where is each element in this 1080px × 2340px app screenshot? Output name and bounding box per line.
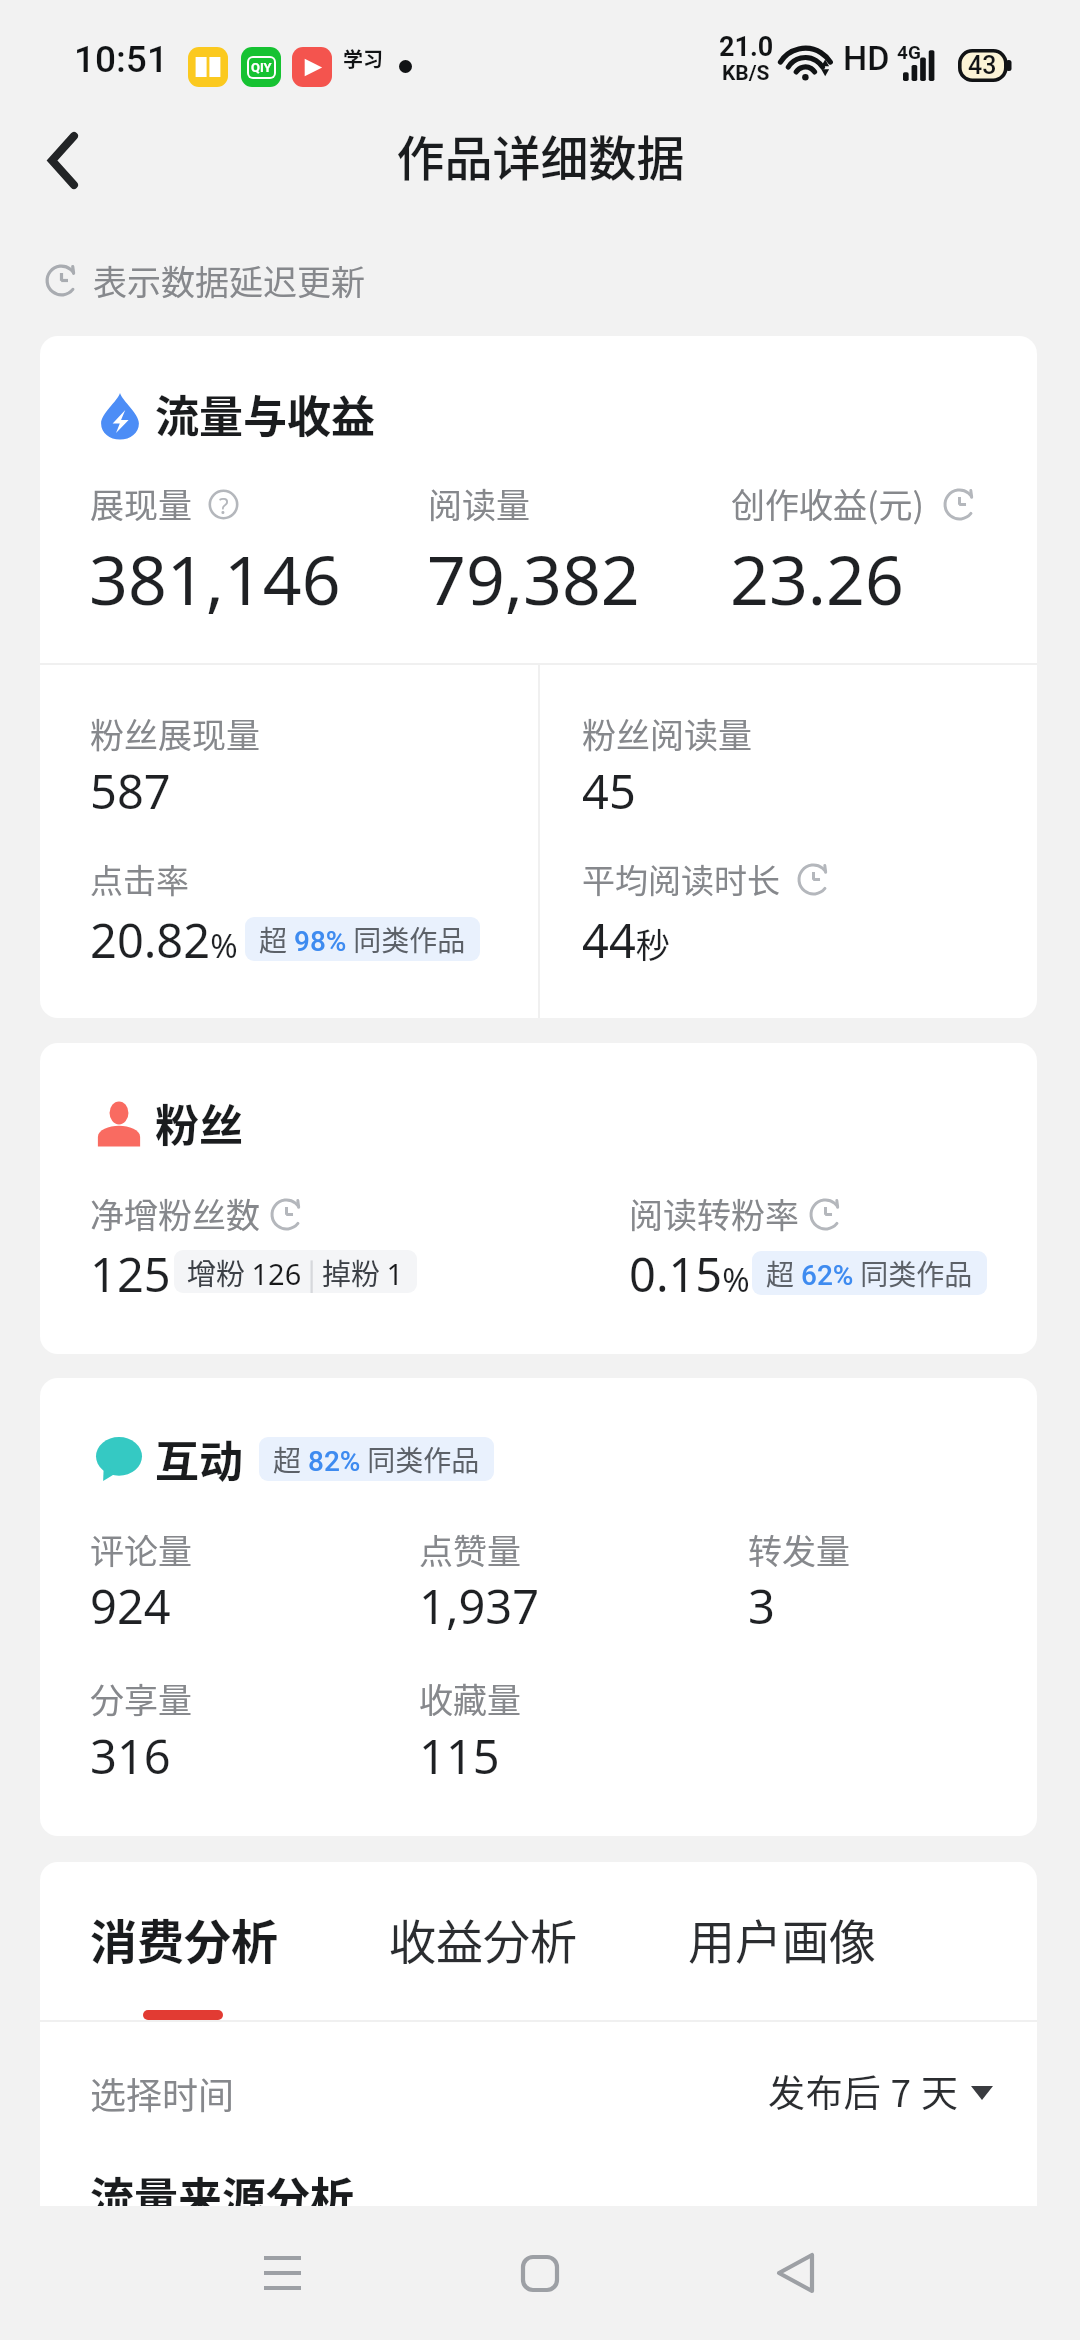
button[interactable]: 发布后 7 天 — [768, 2064, 993, 2118]
staticText: 净增粉丝数 — [90, 1189, 260, 1238]
staticText: 收益分析 — [389, 1904, 577, 1972]
staticText: 粉丝阅读量 — [582, 709, 752, 758]
staticText: 选择时间 — [90, 2067, 235, 2119]
staticText: 点赞量 — [419, 1525, 521, 1574]
button[interactable]: Recent apps — [227, 2218, 337, 2328]
staticText: 125 — [90, 1242, 171, 1306]
staticText: 学习 — [343, 44, 383, 73]
staticText: 381,146 — [89, 532, 341, 625]
staticText: ? — [219, 490, 229, 520]
staticText: 115 — [419, 1724, 500, 1788]
staticText: 粉丝展现量 — [90, 709, 260, 758]
staticText: 3 — [748, 1574, 775, 1638]
staticText: 0.15% — [629, 1242, 750, 1306]
staticText: 收藏量 — [419, 1674, 521, 1723]
staticText: 20.82% — [90, 908, 238, 972]
staticText: 79,382 — [427, 532, 640, 625]
staticText: 流量与收益 — [155, 382, 375, 446]
button[interactable]: Back — [23, 120, 103, 200]
staticText: 924 — [90, 1574, 171, 1638]
staticText: 评论量 — [90, 1525, 192, 1574]
staticText: 316 — [90, 1724, 171, 1788]
button[interactable]: What is impressions? — [208, 489, 239, 520]
staticText: 增粉 126 | 掉粉 1 — [187, 1251, 404, 1293]
staticText: 消费分析 — [90, 1904, 278, 1972]
staticText: 转发量 — [748, 1525, 850, 1574]
staticText: 展现量 — [90, 479, 192, 528]
staticText: 44秒 — [582, 908, 670, 972]
staticText: 45 — [582, 759, 636, 823]
staticText: 分享量 — [90, 1674, 192, 1723]
button[interactable]: 收益分析 — [391, 1896, 603, 2032]
staticText: 表示数据延迟更新 — [93, 256, 365, 305]
staticText: 10:51 — [74, 38, 168, 81]
staticText: QIY — [251, 60, 272, 75]
staticText: 平均阅读时长 — [582, 855, 780, 903]
staticText: 用户画像 — [688, 1904, 876, 1972]
staticText: 互动 — [155, 1427, 243, 1491]
staticText: 流量来源分析 — [90, 2164, 354, 2206]
staticText: 超 62% 同类作品 — [766, 1253, 973, 1294]
staticText: 1,937 — [419, 1574, 540, 1638]
button[interactable]: 用户画像 — [690, 1896, 902, 2032]
staticText: 创作收益(元) — [731, 479, 924, 528]
button[interactable]: Back — [740, 2218, 850, 2328]
staticText: 粉丝 — [155, 1091, 243, 1155]
staticText: 点击率 — [90, 855, 189, 903]
staticText: 阅读转粉率 — [629, 1189, 799, 1238]
staticText: 4G — [897, 41, 921, 63]
staticText: 阅读量 — [428, 479, 530, 528]
staticText: 23.26 — [730, 532, 904, 625]
staticText: 超 82% 同类作品 — [273, 1439, 480, 1480]
staticText: HD — [843, 38, 890, 78]
staticText: 发布后 7 天 — [768, 2064, 959, 2118]
staticText: 43 — [968, 51, 997, 80]
staticText: 超 98% 同类作品 — [259, 919, 466, 960]
staticText: KB/S — [722, 61, 770, 86]
button[interactable]: Home — [485, 2218, 595, 2328]
staticText: 587 — [90, 759, 171, 823]
staticText: 作品详细数据 — [396, 120, 685, 190]
staticText: 21.0 — [719, 31, 774, 63]
button[interactable]: 消费分析 — [92, 1896, 304, 2032]
